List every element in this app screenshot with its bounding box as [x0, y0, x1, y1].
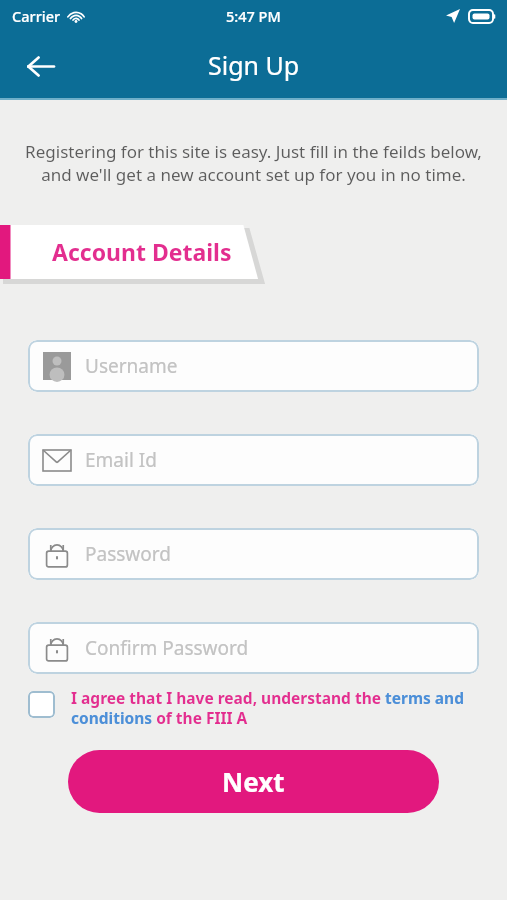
button[interactable]: Back	[16, 42, 64, 90]
staticText: Email Id	[85, 447, 157, 473]
staticText: Registering for this site is easy. Just …	[24, 140, 483, 186]
button[interactable]: Username field	[28, 340, 479, 392]
button[interactable]: Password field	[28, 528, 479, 580]
button[interactable]: Confirm password field	[28, 622, 479, 674]
button[interactable]: Email field	[28, 434, 479, 486]
staticText: Confirm Password	[85, 635, 249, 661]
staticText: Carrier	[12, 6, 61, 26]
button[interactable]: Account Details	[0, 225, 507, 279]
staticText: I agree that I have read, understand the…	[71, 687, 485, 729]
staticText: Sign Up	[208, 48, 300, 82]
staticText: 5:47 PM	[226, 6, 281, 26]
staticText: Password	[85, 541, 171, 567]
staticText: Account Details	[52, 236, 232, 267]
button[interactable]: Next	[68, 750, 439, 813]
staticText: Username	[85, 353, 178, 379]
staticText: Next	[222, 764, 285, 799]
button[interactable]: I agree that I have read, understand the…	[28, 687, 485, 729]
